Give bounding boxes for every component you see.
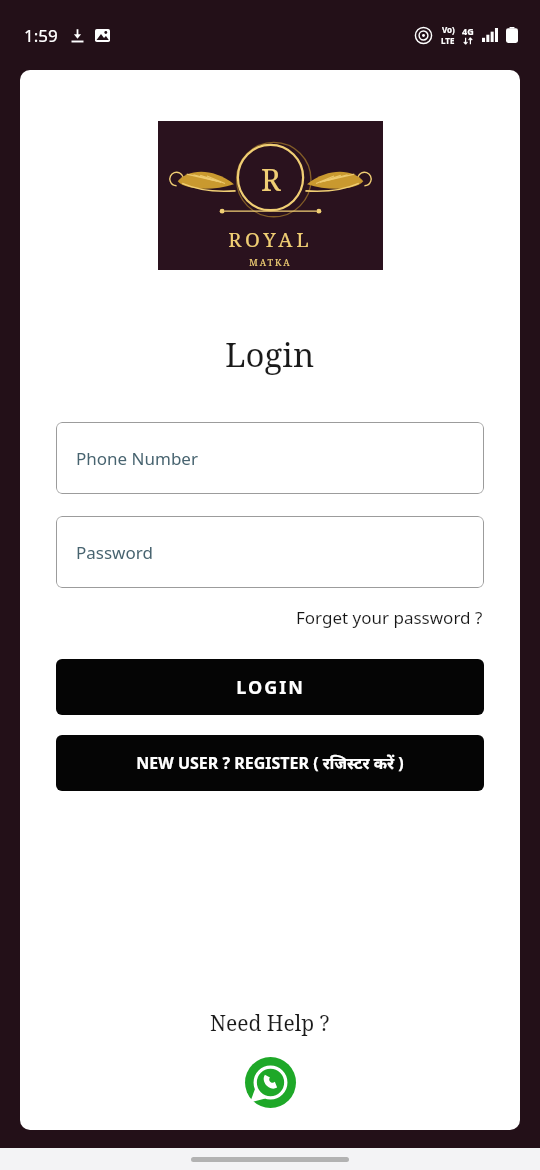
button[interactable]: Phone Number [56,422,484,494]
staticText: 4G [462,25,474,37]
button[interactable]: Contact us on WhatsApp [245,1057,296,1108]
staticText: Password [76,541,153,564]
button[interactable]: NEW USER ? REGISTER ( रजिस्टर करें ) [56,735,484,791]
button[interactable]: Password [56,516,484,588]
staticText: Phone Number [76,447,198,470]
staticText: Forget your password ? [296,606,483,629]
staticText: NEW USER ? REGISTER ( रजिस्टर करें ) [136,752,404,774]
staticText: Login [225,332,315,377]
staticText: R [261,159,281,200]
staticText: Need Help ? [210,1009,330,1038]
staticText: ROYAL [228,226,313,253]
staticText: Vo) [442,24,455,35]
button[interactable]: LOGIN [56,659,484,715]
staticText: LTE [441,35,455,46]
button[interactable]: Forget your password ? [296,606,483,629]
staticText: LOGIN [236,675,305,700]
staticText: MATKA [249,256,292,268]
staticText: 1:59 [24,24,58,47]
